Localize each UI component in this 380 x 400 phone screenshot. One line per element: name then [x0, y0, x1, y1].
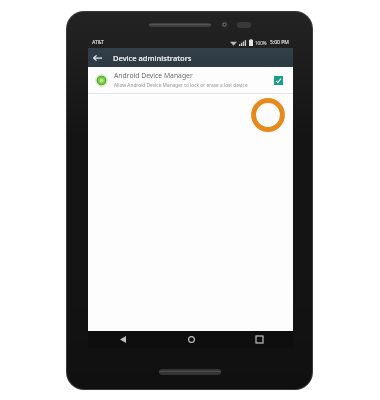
- button[interactable]: Back: [88, 331, 157, 348]
- staticText: Android Device Manager: [114, 71, 193, 80]
- staticText: Allow Android Device Manager to lock or …: [114, 82, 248, 89]
- button[interactable]: Navigate up: [88, 48, 107, 67]
- staticText: 100%: [255, 40, 267, 46]
- button[interactable]: Recent apps: [225, 331, 293, 348]
- staticText: Device administrators: [113, 53, 192, 63]
- button[interactable]: Android Device Manager: [88, 67, 293, 93]
- staticText: 5:00 PM: [270, 39, 289, 46]
- button[interactable]: Home: [157, 331, 225, 348]
- button[interactable]: Enable Android Device Manager: [270, 72, 286, 88]
- staticText: AT&T: [92, 39, 104, 46]
